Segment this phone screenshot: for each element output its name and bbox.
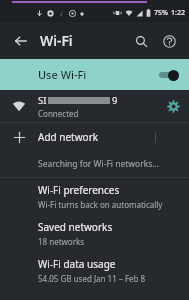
button[interactable]: Back bbox=[6, 26, 36, 56]
staticText: Wi‑Fi preferences bbox=[38, 183, 120, 197]
staticText: 18 networks bbox=[38, 236, 85, 247]
staticText: Searching for Wi‑Fi networks… bbox=[38, 158, 160, 170]
staticText: Use Wi‑Fi bbox=[38, 67, 87, 82]
staticText: Connected bbox=[38, 108, 79, 119]
staticText: 1:22 bbox=[171, 8, 185, 18]
staticText: Saved networks bbox=[38, 220, 113, 234]
staticText: Wi‑Fi bbox=[40, 31, 73, 50]
button[interactable]: Wi‑Fi data usage bbox=[0, 252, 189, 289]
button[interactable]: Wi‑Fi preferences bbox=[0, 178, 189, 215]
staticText: 9 bbox=[112, 94, 118, 107]
staticText: 75% bbox=[154, 8, 168, 18]
staticText: Wi‑Fi data usage bbox=[38, 257, 116, 271]
staticText: Add network bbox=[38, 130, 99, 144]
button[interactable]: SI bbox=[0, 90, 189, 122]
button[interactable]: Add network bbox=[0, 123, 189, 151]
staticText: 54.05 GB used Jan 11 – Feb 8 bbox=[38, 273, 146, 284]
button[interactable]: Network settings bbox=[157, 90, 189, 122]
staticText: Wi‑Fi turns back on automatically bbox=[38, 199, 163, 210]
button[interactable]: Saved networks bbox=[0, 215, 189, 252]
staticText: SI bbox=[38, 94, 47, 107]
button[interactable]: Search bbox=[127, 27, 155, 55]
button[interactable]: Use Wi‑Fi bbox=[0, 59, 189, 90]
button[interactable]: Help bbox=[155, 27, 183, 55]
